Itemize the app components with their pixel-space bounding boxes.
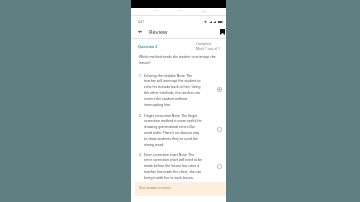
- staticText: 2.: [139, 113, 142, 117]
- staticText: Mark 1 out of 1: [196, 46, 221, 51]
- button[interactable]: Bookmark: [219, 28, 226, 35]
- staticText: Echoing the mistake Note: The teacher wi…: [144, 73, 203, 107]
- button[interactable]: 2.: [131, 113, 226, 149]
- staticText: 1.: [139, 73, 142, 77]
- staticText: Your answer is correct.: [139, 186, 172, 190]
- staticText: Complete: [196, 41, 212, 46]
- staticText: Review: [149, 28, 168, 35]
- staticText: Question 2: [138, 44, 158, 49]
- staticText: 3.: [139, 152, 142, 156]
- staticText: 4:21: [138, 20, 144, 24]
- button[interactable]: 1.: [131, 73, 226, 109]
- button[interactable]: 3.: [131, 152, 226, 182]
- button[interactable]: Question 2: [138, 44, 158, 49]
- staticText: Error correction chart Note: The error c…: [144, 152, 203, 180]
- staticText: Which method needs the teacher to interr…: [139, 55, 216, 65]
- button[interactable]: Back: [137, 28, 144, 35]
- staticText: Finger correction Note: The finger corre…: [144, 113, 203, 147]
